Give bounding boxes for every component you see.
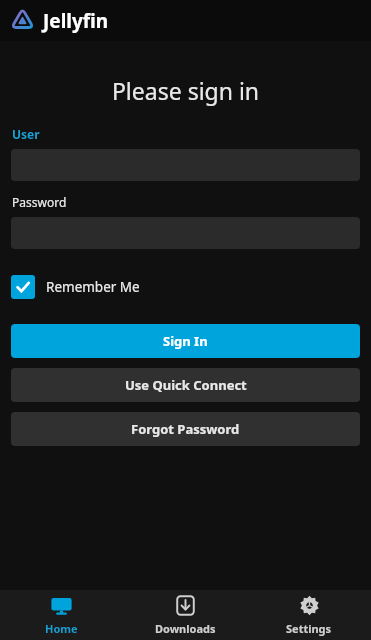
staticText: Remember Me <box>46 278 140 296</box>
staticText: Password <box>12 194 67 210</box>
button[interactable]: Downloads <box>123 590 247 640</box>
staticText: Use Quick Connect <box>125 376 247 394</box>
staticText: Home <box>45 621 78 636</box>
button[interactable]: Remember Me <box>11 275 140 299</box>
staticText: Sign In <box>163 332 208 350</box>
staticText: User <box>12 126 40 142</box>
button[interactable]: Settings <box>247 590 371 640</box>
staticText: Settings <box>286 621 332 636</box>
staticText: Downloads <box>155 621 216 636</box>
button[interactable]: Use Quick Connect <box>11 368 360 402</box>
staticText: Please sign in <box>0 75 371 106</box>
staticText: Jellyfin <box>43 8 109 34</box>
button[interactable]: Forgot Password <box>11 412 360 446</box>
button[interactable]: Home <box>0 590 123 640</box>
staticText: Forgot Password <box>131 420 240 438</box>
button[interactable]: Sign In <box>11 324 360 358</box>
